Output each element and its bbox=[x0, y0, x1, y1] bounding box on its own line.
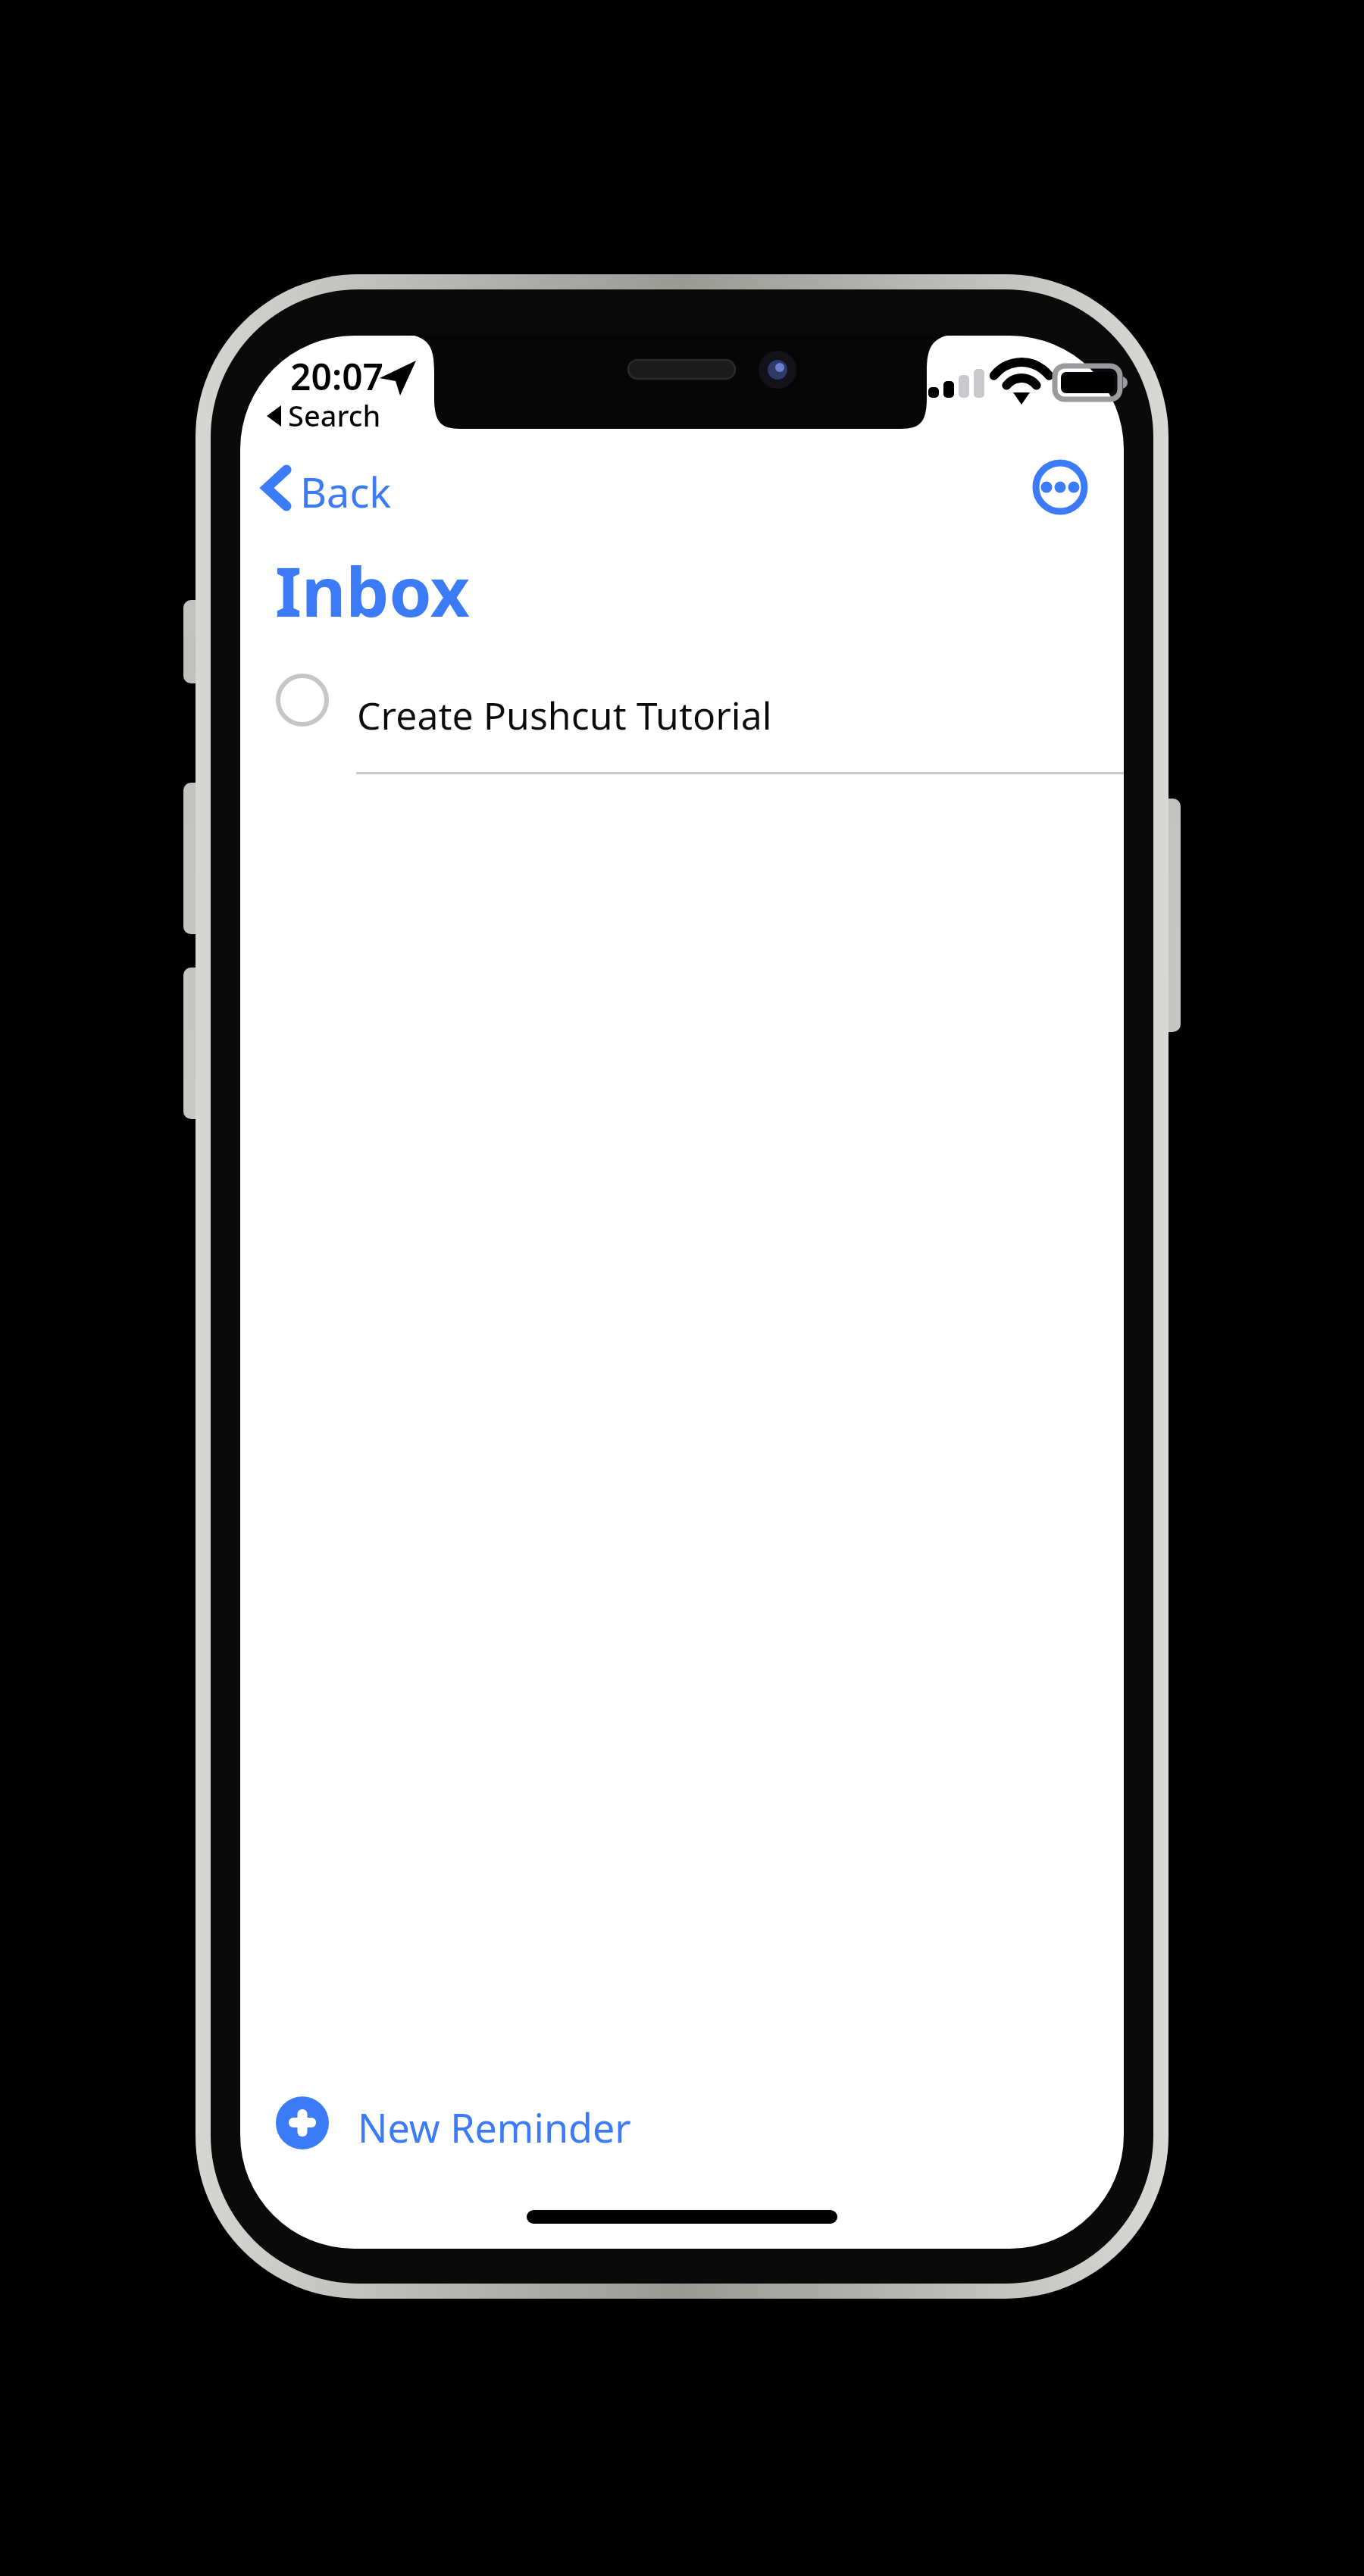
staticText: Back bbox=[300, 464, 392, 520]
button[interactable]: More options bbox=[1021, 448, 1100, 527]
staticText: Search bbox=[288, 395, 381, 435]
staticText: Create Pushcut Tutorial bbox=[357, 689, 772, 741]
staticText: New Reminder bbox=[358, 2100, 631, 2154]
staticText: Inbox bbox=[275, 544, 470, 637]
button[interactable]: Create Pushcut Tutorial bbox=[240, 653, 1124, 772]
button[interactable]: Back bbox=[258, 455, 447, 524]
button[interactable]: New Reminder bbox=[258, 2080, 652, 2168]
staticText: 20:07 bbox=[290, 352, 384, 401]
